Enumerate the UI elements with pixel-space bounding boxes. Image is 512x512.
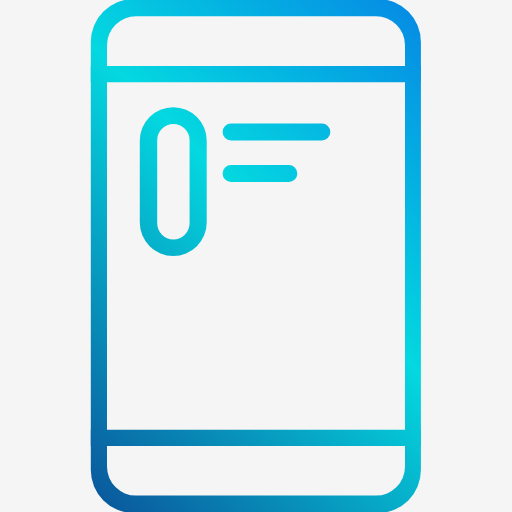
button[interactable]: Mobile article, open reader bbox=[0, 0, 512, 512]
